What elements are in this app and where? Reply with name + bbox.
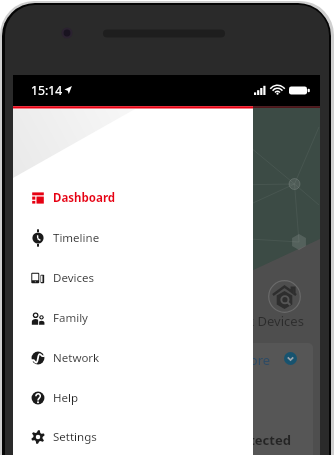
button[interactable]: Help (13, 378, 253, 418)
staticText: Devices (53, 270, 94, 286)
staticText: Help (53, 390, 79, 406)
staticText: 15:14 (31, 82, 63, 99)
button[interactable]: Network (13, 338, 253, 378)
staticText: Family (53, 310, 88, 326)
button[interactable]: Settings (13, 418, 253, 455)
staticText: ck Devices (241, 312, 304, 330)
button[interactable]: Family (13, 298, 253, 338)
staticText: otected (241, 431, 291, 449)
staticText: Dashboard (53, 190, 116, 206)
button[interactable]: Devices (13, 258, 253, 298)
staticText: More (238, 351, 271, 369)
button[interactable]: Dashboard (13, 178, 253, 218)
staticText: Timeline (53, 230, 100, 246)
staticText: Network (53, 350, 100, 366)
button[interactable]: Timeline (13, 218, 253, 258)
staticText: Settings (53, 429, 97, 445)
